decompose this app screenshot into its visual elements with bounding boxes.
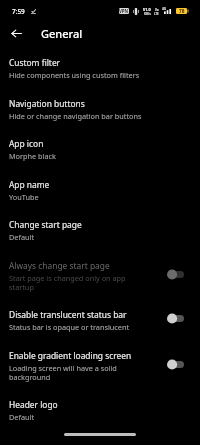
staticText: 51.0 bbox=[143, 7, 151, 12]
staticText: Always change start page bbox=[9, 260, 110, 271]
button[interactable]: Enable gradient loading screen bbox=[0, 350, 200, 383]
staticText: Start page is changed only on app startu… bbox=[9, 273, 139, 293]
staticText: General bbox=[41, 26, 83, 41]
staticText: Hide components using custom filters bbox=[9, 70, 159, 80]
staticText: Navigation buttons bbox=[9, 98, 85, 109]
staticText: VPN bbox=[119, 8, 129, 14]
staticText: Change start page bbox=[9, 219, 82, 230]
button[interactable]: Always change start page bbox=[0, 260, 200, 293]
staticText: LTE bbox=[154, 12, 159, 16]
button[interactable]: Toggle bbox=[167, 269, 184, 280]
button[interactable]: App icon bbox=[0, 138, 200, 161]
staticText: Header logo bbox=[9, 399, 58, 410]
button[interactable]: Toggle bbox=[167, 313, 184, 324]
button[interactable]: Toggle bbox=[167, 359, 184, 370]
staticText: Status bar is opaque or translucent bbox=[9, 322, 149, 332]
button[interactable]: Back bbox=[4, 21, 28, 45]
staticText: 4G bbox=[162, 7, 167, 11]
staticText: Custom filter bbox=[9, 57, 61, 68]
staticText: Default bbox=[9, 412, 159, 422]
staticText: Loading screen will have a solid backgro… bbox=[9, 363, 139, 383]
staticText: 78 bbox=[179, 8, 185, 14]
button[interactable]: App name bbox=[0, 179, 200, 202]
staticText: App icon bbox=[9, 138, 44, 149]
staticText: Vo bbox=[155, 8, 159, 12]
button[interactable]: Disable translucent status bar bbox=[0, 309, 200, 332]
staticText: App name bbox=[9, 179, 50, 190]
staticText: KB/s bbox=[144, 12, 151, 16]
button[interactable]: Change start page bbox=[0, 219, 200, 242]
staticText: Enable gradient loading screen bbox=[9, 350, 132, 361]
staticText: Default bbox=[9, 232, 159, 242]
button[interactable]: Header logo bbox=[0, 399, 200, 422]
staticText: Morphe black bbox=[9, 151, 159, 161]
button[interactable]: Custom filter bbox=[0, 57, 200, 80]
staticText: 7:59 bbox=[12, 7, 25, 16]
staticText: YouTube bbox=[9, 192, 159, 202]
staticText: Disable translucent status bar bbox=[9, 309, 127, 320]
button[interactable]: Navigation buttons bbox=[0, 98, 200, 121]
staticText: Hide or change navigation bar buttons bbox=[9, 111, 159, 121]
